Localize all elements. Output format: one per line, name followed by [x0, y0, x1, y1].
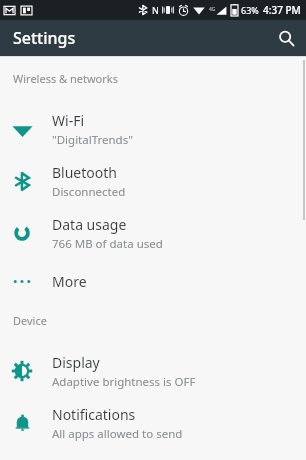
staticText: N	[152, 4, 159, 16]
staticText: 63%	[241, 4, 259, 16]
button[interactable]: Notifications	[0, 397, 306, 449]
staticText: Disconnected	[52, 184, 126, 200]
staticText: More	[52, 272, 87, 291]
staticText: Data usage	[52, 215, 127, 234]
staticText: "DigitalTrends"	[52, 132, 133, 148]
staticText: All apps allowed to send	[52, 426, 183, 442]
button[interactable]: More	[0, 259, 306, 303]
staticText: Wireless & networks	[13, 71, 118, 86]
staticText: Bluetooth	[52, 163, 117, 182]
staticText: Adaptive brightness is OFF	[52, 374, 196, 390]
button[interactable]: Wi-Fi	[0, 103, 306, 155]
staticText: Settings	[13, 27, 76, 49]
staticText: 766 MB of data used	[52, 236, 163, 252]
button[interactable]: Search	[271, 23, 301, 53]
button[interactable]: Data usage	[0, 207, 306, 259]
staticText: Wi-Fi	[52, 111, 85, 130]
staticText: Device	[13, 313, 47, 328]
staticText: 4G	[209, 6, 216, 13]
staticText: Notifications	[52, 405, 136, 424]
staticText: 4:37 PM	[263, 3, 301, 17]
button[interactable]: Display	[0, 345, 306, 397]
button[interactable]: Bluetooth	[0, 155, 306, 207]
staticText: Display	[52, 353, 100, 372]
